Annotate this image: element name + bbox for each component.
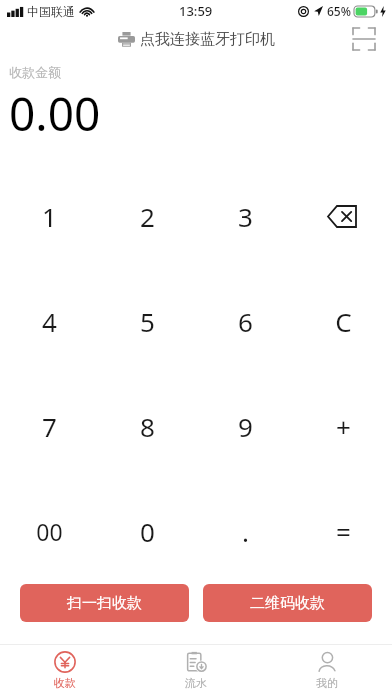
staticText: 2	[140, 199, 155, 234]
staticText: 我的	[316, 676, 338, 690]
staticText: =	[336, 514, 351, 549]
staticText: 点我连接蓝牙打印机	[140, 30, 275, 49]
staticText: 0.00	[9, 82, 101, 145]
button[interactable]: 二维码收款	[203, 584, 372, 622]
staticText: 0	[140, 514, 155, 549]
button[interactable]: Scan	[348, 23, 380, 55]
button[interactable]: 2	[98, 163, 196, 269]
button[interactable]: C	[294, 269, 392, 374]
button[interactable]: 点我连接蓝牙打印机	[112, 26, 281, 53]
staticText: 收款金额	[9, 64, 61, 80]
staticText: 4	[42, 304, 57, 339]
button[interactable]: 我的	[261, 647, 392, 694]
button[interactable]: 8	[98, 374, 196, 479]
button[interactable]: 流水	[130, 647, 261, 694]
button[interactable]: 0	[98, 479, 196, 584]
staticText: 13:59	[179, 2, 213, 20]
staticText: C	[335, 304, 352, 339]
staticText: 扫一扫收款	[67, 594, 142, 613]
staticText: 5	[140, 304, 155, 339]
button[interactable]: 1	[0, 163, 98, 269]
button[interactable]: 3	[196, 163, 294, 269]
staticText: 7	[42, 409, 57, 444]
button[interactable]: 7	[0, 374, 98, 479]
button[interactable]: Backspace	[294, 163, 392, 269]
staticText: 1	[42, 199, 57, 234]
button[interactable]: 00	[0, 479, 98, 584]
staticText: 6	[238, 304, 253, 339]
staticText: 流水	[185, 676, 207, 690]
button[interactable]: 收款	[0, 647, 130, 694]
staticText: +	[336, 409, 351, 444]
other: Backspace	[328, 206, 358, 227]
staticText: 00	[36, 516, 63, 547]
staticText: 65%	[327, 3, 351, 19]
staticText: .	[242, 514, 249, 549]
staticText: 9	[238, 409, 253, 444]
button[interactable]: .	[196, 479, 294, 584]
staticText: 中国联通	[27, 4, 75, 19]
staticText: 收款	[54, 676, 76, 690]
button[interactable]: =	[294, 479, 392, 584]
button[interactable]: 4	[0, 269, 98, 374]
button[interactable]: 扫一扫收款	[20, 584, 189, 622]
button[interactable]: +	[294, 374, 392, 479]
button[interactable]: 5	[98, 269, 196, 374]
staticText: 3	[238, 199, 253, 234]
staticText: 8	[140, 409, 155, 444]
button[interactable]: 9	[196, 374, 294, 479]
staticText: 二维码收款	[250, 594, 325, 613]
button[interactable]: 6	[196, 269, 294, 374]
